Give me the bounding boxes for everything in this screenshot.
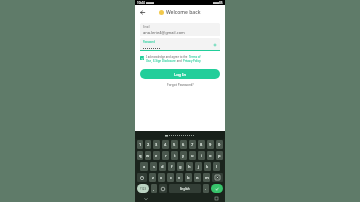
button[interactable]: g <box>177 162 184 171</box>
button[interactable]: English <box>169 184 201 193</box>
button[interactable]: d <box>159 162 166 171</box>
staticText: 1 <box>139 142 142 147</box>
button[interactable]: l <box>213 162 220 171</box>
staticText: v <box>178 175 181 180</box>
button[interactable]: ?123 <box>137 184 149 193</box>
staticText: I acknowledge and agree to the <box>146 55 189 59</box>
staticText: x <box>160 175 163 180</box>
button[interactable]: Enter <box>211 184 223 193</box>
button[interactable]: j <box>195 162 202 171</box>
button[interactable]: n <box>194 173 201 182</box>
staticText: 6 <box>182 142 185 147</box>
button[interactable]: f <box>168 162 175 171</box>
staticText: E-Sign Disclosure <box>153 59 176 63</box>
staticText: 5 <box>173 142 176 147</box>
staticText: 2 <box>147 142 150 147</box>
button[interactable]: 4 <box>162 140 169 149</box>
staticText: 8 <box>200 142 203 147</box>
button[interactable]: i <box>198 151 205 160</box>
button[interactable]: Backspace <box>212 173 223 182</box>
button[interactable]: b <box>185 173 192 182</box>
button[interactable]: 9 <box>207 140 214 149</box>
staticText: 3 <box>155 142 158 147</box>
button[interactable]: m <box>203 173 210 182</box>
staticText: k <box>206 164 209 169</box>
button[interactable]: w <box>145 151 151 160</box>
staticText: c <box>170 175 172 180</box>
staticText: 0 <box>218 142 221 147</box>
button[interactable]: Shift <box>137 173 147 182</box>
button[interactable]: 1 <box>137 140 143 149</box>
button[interactable]: 5 <box>171 140 178 149</box>
staticText: o <box>209 153 212 158</box>
staticText: s <box>153 164 155 169</box>
staticText: . <box>205 186 207 191</box>
button[interactable]: , <box>151 184 157 193</box>
staticText: ana.lerie4@gmail.com <box>143 30 185 35</box>
button[interactable]: 7 <box>189 140 196 149</box>
button[interactable]: Back <box>138 8 147 17</box>
staticText: r <box>165 153 167 158</box>
staticText: Privacy Policy <box>183 59 201 63</box>
button[interactable]: Log In <box>140 69 220 79</box>
button[interactable]: Recents <box>214 196 219 201</box>
staticText: n <box>196 175 199 180</box>
staticText: l <box>216 164 218 169</box>
staticText: y <box>182 153 185 158</box>
button[interactable]: Forgot Password? <box>167 83 194 87</box>
button[interactable]: Email <box>140 23 220 36</box>
staticText: f <box>171 164 173 169</box>
button[interactable]: y <box>180 151 187 160</box>
staticText: 85 <box>219 1 223 5</box>
button[interactable]: 8 <box>198 140 205 149</box>
staticText: , <box>153 186 155 191</box>
staticText: Email <box>143 25 150 29</box>
staticText: a <box>143 164 146 169</box>
button[interactable]: q <box>137 151 143 160</box>
staticText: m <box>205 175 209 180</box>
button[interactable]: p <box>216 151 223 160</box>
staticText: w <box>146 153 150 158</box>
staticText: u <box>191 153 194 158</box>
staticText: ?123 <box>140 187 147 191</box>
button[interactable]: h <box>186 162 193 171</box>
staticText: q <box>139 153 142 158</box>
button[interactable]: . <box>203 184 209 193</box>
button[interactable]: v <box>176 173 183 182</box>
staticText: d <box>161 164 164 169</box>
button[interactable]: x <box>158 173 165 182</box>
button[interactable]: s <box>150 162 157 171</box>
staticText: j <box>198 164 200 169</box>
staticText: b <box>187 175 190 180</box>
staticText: h <box>188 164 191 169</box>
staticText: g <box>179 164 182 169</box>
staticText: 10:44 <box>137 1 145 5</box>
button[interactable]: o <box>207 151 214 160</box>
button[interactable]: k <box>204 162 211 171</box>
button[interactable]: z <box>149 173 156 182</box>
staticText: e <box>155 153 158 158</box>
staticText: Use, <box>146 59 153 63</box>
button[interactable]: c <box>167 173 174 182</box>
button[interactable]: e <box>153 151 160 160</box>
staticText: 4 <box>164 142 167 147</box>
staticText: Log In <box>174 72 187 77</box>
staticText: Terms of <box>189 55 201 59</box>
staticText: Password <box>143 40 155 44</box>
staticText: English <box>180 187 190 191</box>
button[interactable]: 3 <box>153 140 160 149</box>
staticText: and <box>176 59 183 63</box>
button[interactable]: 2 <box>145 140 151 149</box>
button[interactable]: Password <box>140 38 220 51</box>
button[interactable]: Show password <box>212 42 218 48</box>
button[interactable]: 0 <box>216 140 223 149</box>
button[interactable]: 6 <box>180 140 187 149</box>
button[interactable]: Emoji <box>159 184 167 193</box>
button[interactable]: u <box>189 151 196 160</box>
staticText: Welcome back <box>166 9 201 16</box>
button[interactable]: I acknowledge and agree to the <box>140 55 220 63</box>
button[interactable]: t <box>171 151 178 160</box>
button[interactable]: r <box>162 151 169 160</box>
button[interactable]: Hide keyboard <box>143 196 148 201</box>
button[interactable]: a <box>140 162 148 171</box>
